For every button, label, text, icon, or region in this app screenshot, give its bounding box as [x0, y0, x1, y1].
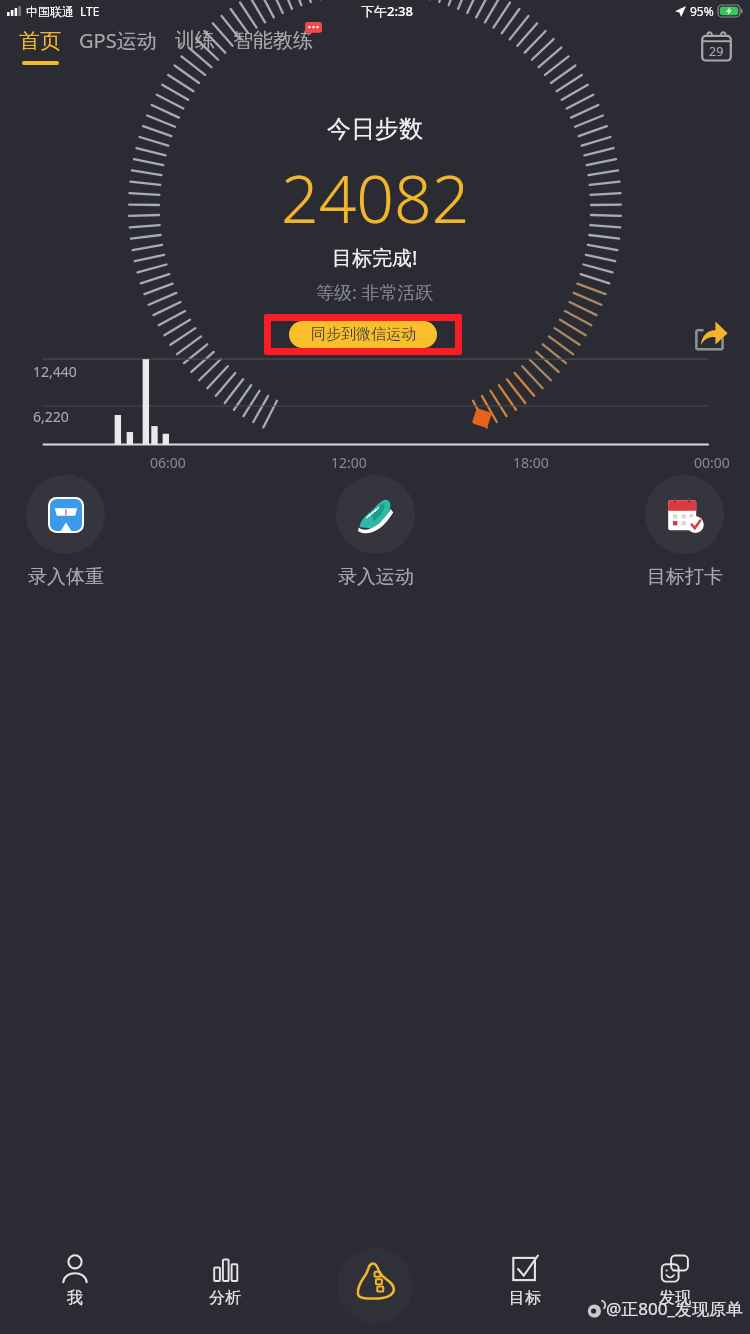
staticText: 06:00 [150, 453, 186, 472]
staticText: 95% [690, 3, 714, 19]
staticText: 目标 [509, 1288, 541, 1308]
button[interactable]: Share [694, 318, 728, 352]
button[interactable]: Steps [300, 1254, 450, 1334]
button[interactable]: 目标打卡 [645, 475, 724, 589]
button[interactable]: 训练 [175, 28, 215, 64]
staticText: 12:00 [331, 453, 367, 472]
staticText: 今日步数 [327, 114, 423, 144]
staticText: 同步到微信运动 [311, 325, 416, 344]
staticText: 29 [709, 43, 724, 60]
staticText: 12,440 [33, 362, 77, 381]
staticText: 下午2:38 [361, 2, 413, 20]
staticText: 分析 [209, 1288, 241, 1308]
staticText: LTE [80, 3, 100, 19]
staticText: 训练 [175, 28, 215, 53]
staticText: 录入体重 [28, 565, 104, 589]
button[interactable]: 目标 [450, 1254, 600, 1334]
staticText: 首页 [19, 28, 61, 54]
staticText: 中国联通 [26, 4, 74, 19]
button[interactable]: 同步到微信运动 [289, 321, 437, 348]
button[interactable]: 首页 [19, 28, 61, 65]
staticText: 等级: 非常活跃 [316, 280, 434, 305]
button[interactable]: GPS运动 [79, 27, 157, 65]
button[interactable]: 录入运动 [336, 475, 415, 589]
staticText: 18:00 [513, 453, 549, 472]
staticText: 智能教练 [233, 28, 313, 53]
staticText: GPS运动 [79, 27, 157, 54]
button[interactable]: 智能教练 [233, 28, 313, 64]
staticText: 6,220 [33, 407, 69, 426]
staticText: 发现 [659, 1288, 691, 1308]
staticText: 我 [67, 1288, 83, 1308]
staticText: 00:00 [694, 453, 730, 472]
button[interactable]: Calendar, 29 [698, 28, 734, 64]
button[interactable]: 我 [0, 1254, 150, 1334]
staticText: 24082 [281, 152, 470, 242]
staticText: 目标完成! [332, 244, 418, 271]
staticText: @正800_发现原单 [606, 1297, 744, 1320]
staticText: 录入运动 [338, 565, 414, 589]
button[interactable]: 录入体重 [26, 475, 105, 589]
button[interactable]: 分析 [150, 1254, 300, 1334]
button[interactable]: 发现 [600, 1254, 750, 1334]
staticText: 目标打卡 [647, 565, 723, 589]
